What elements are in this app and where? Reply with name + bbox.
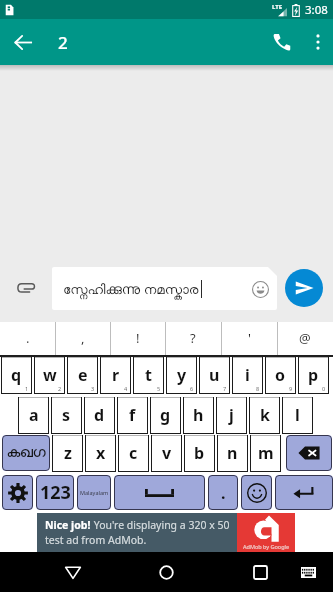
staticText: 7 <box>223 385 227 392</box>
button[interactable]: @ <box>277 322 333 355</box>
staticText: . <box>221 482 226 504</box>
button[interactable]: a <box>18 397 49 434</box>
staticText: k <box>260 404 270 426</box>
staticText: You're displaying a 320 x 50 <box>91 518 230 532</box>
staticText: z <box>64 442 72 464</box>
staticText: Malayalam <box>80 489 109 496</box>
button[interactable]: Send <box>285 269 323 307</box>
staticText: q <box>11 364 22 386</box>
staticText: t <box>145 364 152 386</box>
staticText: v <box>162 442 172 464</box>
staticText: e <box>78 364 88 386</box>
staticText: 6 <box>190 385 194 392</box>
staticText: r <box>112 364 120 386</box>
button[interactable]: Enter <box>275 475 333 510</box>
staticText: o <box>275 364 286 386</box>
button[interactable]: Back <box>49 552 97 592</box>
button[interactable]: Language <box>77 475 111 510</box>
staticText: d <box>94 404 105 426</box>
button[interactable]: l <box>282 397 313 434</box>
staticText: j <box>229 404 234 426</box>
button[interactable]: r <box>100 357 131 394</box>
button[interactable]: Recent apps <box>236 552 284 592</box>
staticText: ? <box>190 329 196 347</box>
staticText: 9 <box>289 385 293 392</box>
button[interactable]: b <box>184 435 215 472</box>
staticText: 123 <box>40 480 71 505</box>
button[interactable]: p <box>298 357 329 394</box>
button[interactable]: Home <box>142 552 190 592</box>
staticText: u <box>209 364 220 386</box>
button[interactable]: Emoji <box>247 276 273 302</box>
button[interactable]: Navigate up <box>0 19 46 65</box>
button[interactable]: . <box>0 322 55 355</box>
staticText: സ്നേഹിക്കുന്നു നമസ്കാര <box>63 280 199 298</box>
button[interactable]: v <box>151 435 182 472</box>
staticText: 4 <box>124 385 128 392</box>
button[interactable]: h <box>183 397 214 434</box>
button[interactable]: u <box>199 357 230 394</box>
staticText: 0 <box>322 385 326 392</box>
button[interactable]: Backspace <box>286 435 332 471</box>
staticText: g <box>160 404 171 426</box>
staticText: f <box>129 404 136 426</box>
button[interactable]: x <box>85 435 116 472</box>
staticText: a <box>29 404 39 426</box>
staticText: s <box>62 404 71 426</box>
staticText: , <box>81 329 85 347</box>
button[interactable]: Malayalam letters <box>2 435 50 471</box>
staticText: ! <box>136 329 140 347</box>
button[interactable]: n <box>217 435 248 472</box>
button[interactable]: i <box>232 357 263 394</box>
staticText: 3:08 <box>305 2 328 18</box>
button[interactable]: c <box>118 435 149 472</box>
button[interactable]: , <box>55 322 110 355</box>
button[interactable]: z <box>52 435 83 472</box>
staticText: p <box>308 364 319 386</box>
staticText: Nice job! <box>45 518 91 532</box>
staticText: കഖഗ <box>7 446 46 460</box>
button[interactable]: Change keyboard <box>290 552 326 592</box>
staticText: 1 <box>25 385 29 392</box>
button[interactable]: j <box>216 397 247 434</box>
button[interactable]: ' <box>221 322 277 355</box>
button[interactable]: Nice job! <box>37 513 237 552</box>
staticText: . <box>26 329 30 347</box>
staticText: 8 <box>256 385 260 392</box>
button[interactable]: w <box>34 357 65 394</box>
staticText: l <box>295 404 300 426</box>
button[interactable]: Attach file <box>7 269 45 307</box>
staticText: x <box>96 442 106 464</box>
button[interactable]: More options <box>303 19 333 65</box>
button[interactable]: f <box>117 397 148 434</box>
button[interactable]: d <box>84 397 115 434</box>
button[interactable]: ! <box>110 322 165 355</box>
staticText: 5 <box>157 385 161 392</box>
staticText: LTE <box>272 3 283 11</box>
staticText: 2 <box>58 31 68 54</box>
staticText: i <box>245 364 250 386</box>
button[interactable]: AdMob by Google <box>237 513 295 552</box>
button[interactable]: Period <box>208 475 238 510</box>
button[interactable]: Call <box>261 19 303 65</box>
button[interactable]: g <box>150 397 181 434</box>
button[interactable]: k <box>249 397 280 434</box>
button[interactable]: s <box>51 397 82 434</box>
staticText: 3 <box>91 385 95 392</box>
button[interactable]: q <box>1 357 32 394</box>
staticText: c <box>129 442 138 464</box>
staticText: w <box>43 364 57 386</box>
button[interactable]: Emoji <box>241 475 272 510</box>
button[interactable]: Numbers <box>36 475 74 510</box>
staticText: AdMob by Google <box>243 543 290 550</box>
button[interactable]: Space <box>114 475 205 510</box>
staticText: h <box>193 404 204 426</box>
button[interactable]: ? <box>165 322 221 355</box>
button[interactable]: m <box>250 435 281 472</box>
button[interactable]: Settings <box>2 475 33 510</box>
staticText: y <box>177 364 187 386</box>
button[interactable]: t <box>133 357 164 394</box>
button[interactable]: o <box>265 357 296 394</box>
button[interactable]: y <box>166 357 197 394</box>
button[interactable]: e <box>67 357 98 394</box>
